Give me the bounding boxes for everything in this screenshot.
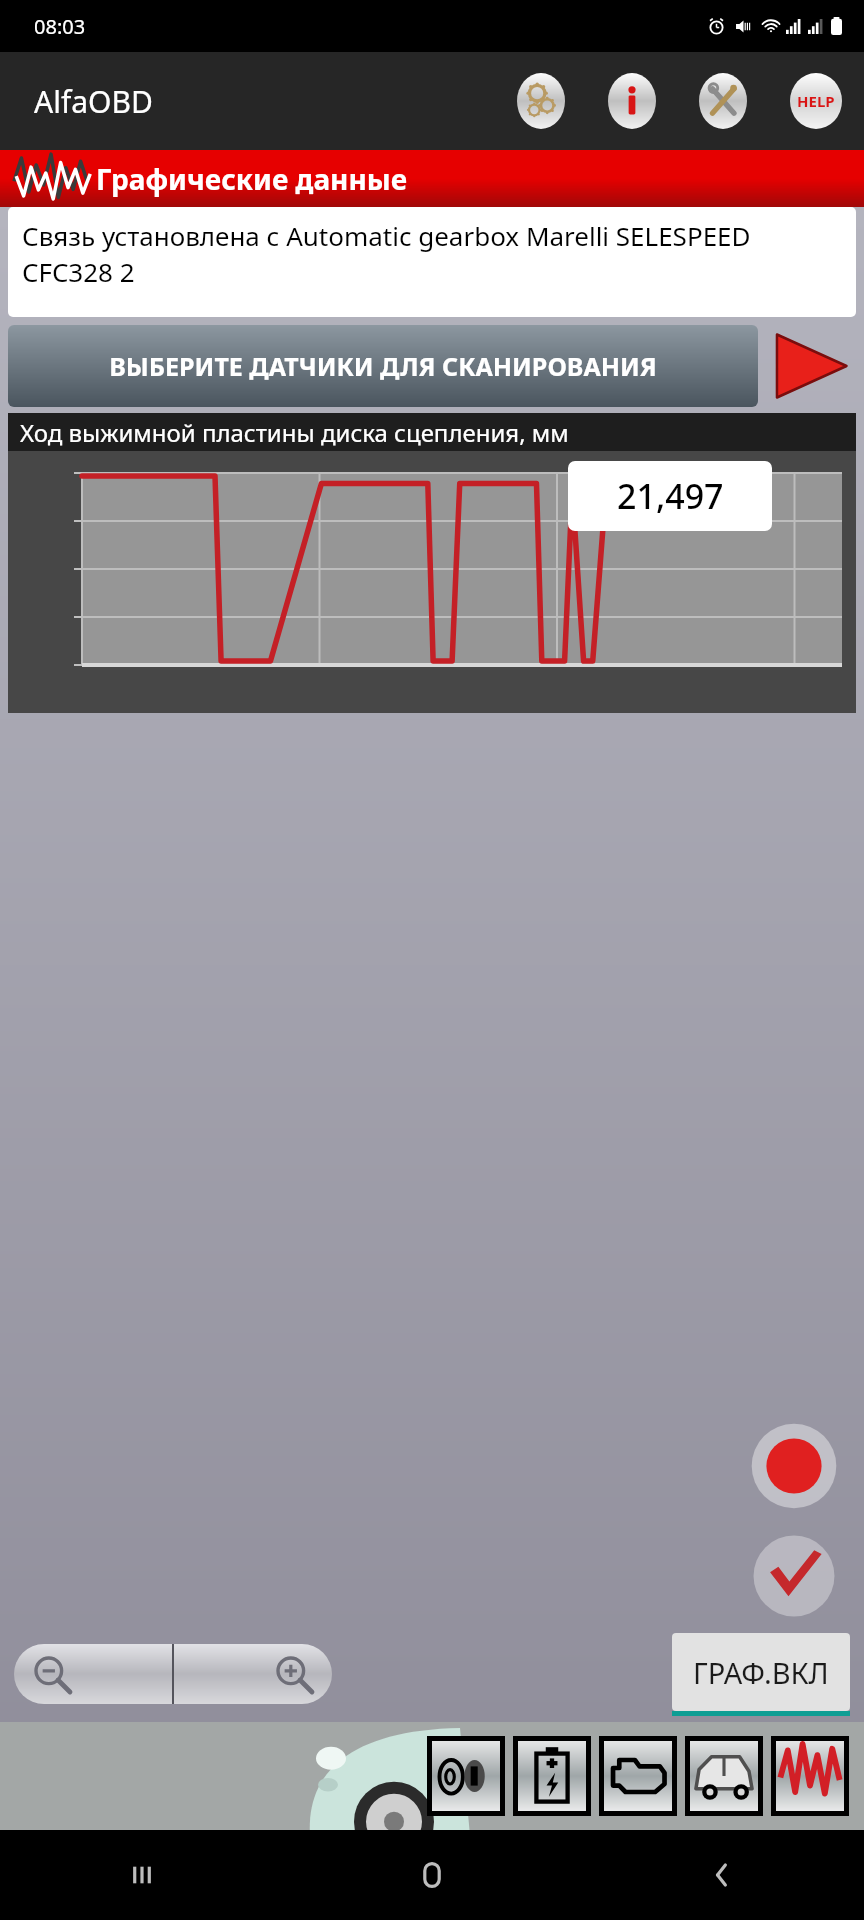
- button[interactable]: Help: [790, 73, 842, 129]
- button[interactable]: Back: [690, 1843, 754, 1907]
- button[interactable]: Home: [400, 1843, 464, 1907]
- button[interactable]: Settings: [517, 73, 565, 129]
- button[interactable]: ГРАФ.ВКЛ: [672, 1633, 850, 1711]
- staticText: AlfaOBD: [34, 81, 153, 122]
- button[interactable]: Ignition: [427, 1736, 505, 1816]
- staticText: HELP: [797, 91, 835, 111]
- button[interactable]: Zoom in: [174, 1644, 332, 1704]
- button[interactable]: Record: [748, 1420, 840, 1512]
- button[interactable]: Zoom out: [14, 1644, 172, 1704]
- staticText: ГРАФ.ВКЛ: [693, 1653, 829, 1692]
- button[interactable]: Battery: [513, 1736, 591, 1816]
- button[interactable]: Tools: [699, 73, 747, 129]
- staticText: 08:03: [34, 13, 86, 40]
- button[interactable]: Check engine: [599, 1736, 677, 1816]
- button[interactable]: Confirm: [748, 1530, 840, 1622]
- button[interactable]: ВЫБЕРИТЕ ДАТЧИКИ ДЛЯ СКАНИРОВАНИЯ: [8, 325, 758, 407]
- staticText: 21,497: [617, 473, 724, 519]
- button[interactable]: Vehicle: [685, 1736, 763, 1816]
- staticText: Связь установлена с Automatic gearbox Ma…: [22, 218, 848, 290]
- button[interactable]: Recent apps: [110, 1843, 174, 1907]
- staticText: ВЫБЕРИТЕ ДАТЧИКИ ДЛЯ СКАНИРОВАНИЯ: [109, 349, 657, 383]
- staticText: Графические данные: [96, 160, 408, 198]
- button[interactable]: Start: [768, 325, 854, 407]
- button[interactable]: Graph: [771, 1736, 849, 1816]
- staticText: Ход выжимной пластины диска сцепления, м…: [20, 416, 569, 449]
- button[interactable]: Info: [608, 73, 656, 129]
